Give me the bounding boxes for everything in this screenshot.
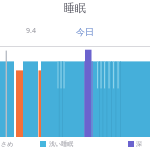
button[interactable]: 今日 <box>62 24 108 38</box>
staticText: 9.4 <box>26 26 36 36</box>
button[interactable]: 浅い睡眠 <box>40 137 128 150</box>
button[interactable]: 睡眠グラフ <box>0 47 150 137</box>
staticText: 浅い睡眠 <box>49 140 74 148</box>
button[interactable]: 深 <box>128 137 150 150</box>
staticText: 今日 <box>76 26 94 37</box>
button[interactable]: 9.4 <box>0 24 62 38</box>
staticText: 睡眠 <box>64 1 86 15</box>
button[interactable]: さめ <box>0 137 40 150</box>
button[interactable]: 睡眠 <box>0 0 150 16</box>
staticText: 深 <box>136 140 142 148</box>
staticText: さめ <box>1 140 14 148</box>
